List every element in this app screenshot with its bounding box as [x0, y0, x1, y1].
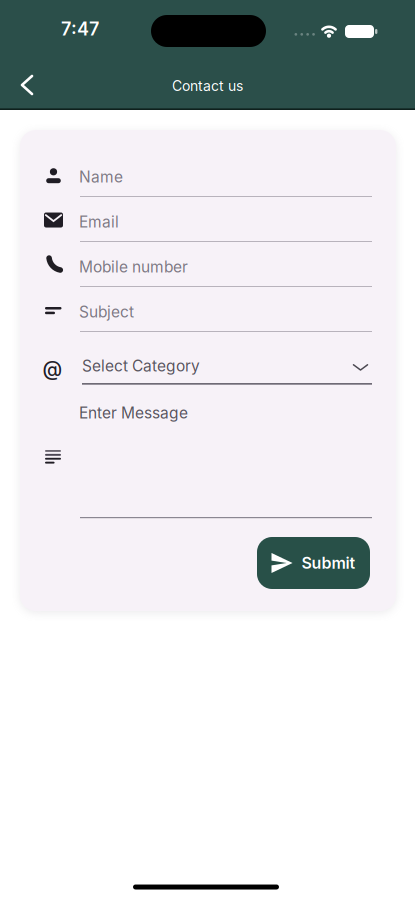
- button[interactable]: Submit: [257, 537, 370, 589]
- staticText: Email: [79, 212, 119, 231]
- staticText: Enter Message: [79, 403, 188, 422]
- button[interactable]: Name: [45, 154, 372, 198]
- staticText: Contact us: [172, 77, 243, 94]
- button[interactable]: Mobile number: [45, 244, 372, 288]
- button[interactable]: Email: [45, 199, 372, 243]
- button[interactable]: Enter Message: [45, 400, 372, 520]
- staticText: Subject: [79, 302, 134, 321]
- button[interactable]: Back: [9, 70, 45, 100]
- staticText: 7:47: [61, 18, 99, 40]
- button[interactable]: Subject: [45, 289, 372, 333]
- button[interactable]: @: [45, 345, 372, 389]
- staticText: Mobile number: [79, 257, 188, 276]
- staticText: Submit: [301, 553, 355, 573]
- staticText: Name: [79, 167, 123, 186]
- staticText: Select Category: [82, 356, 200, 375]
- staticText: @: [42, 356, 62, 381]
